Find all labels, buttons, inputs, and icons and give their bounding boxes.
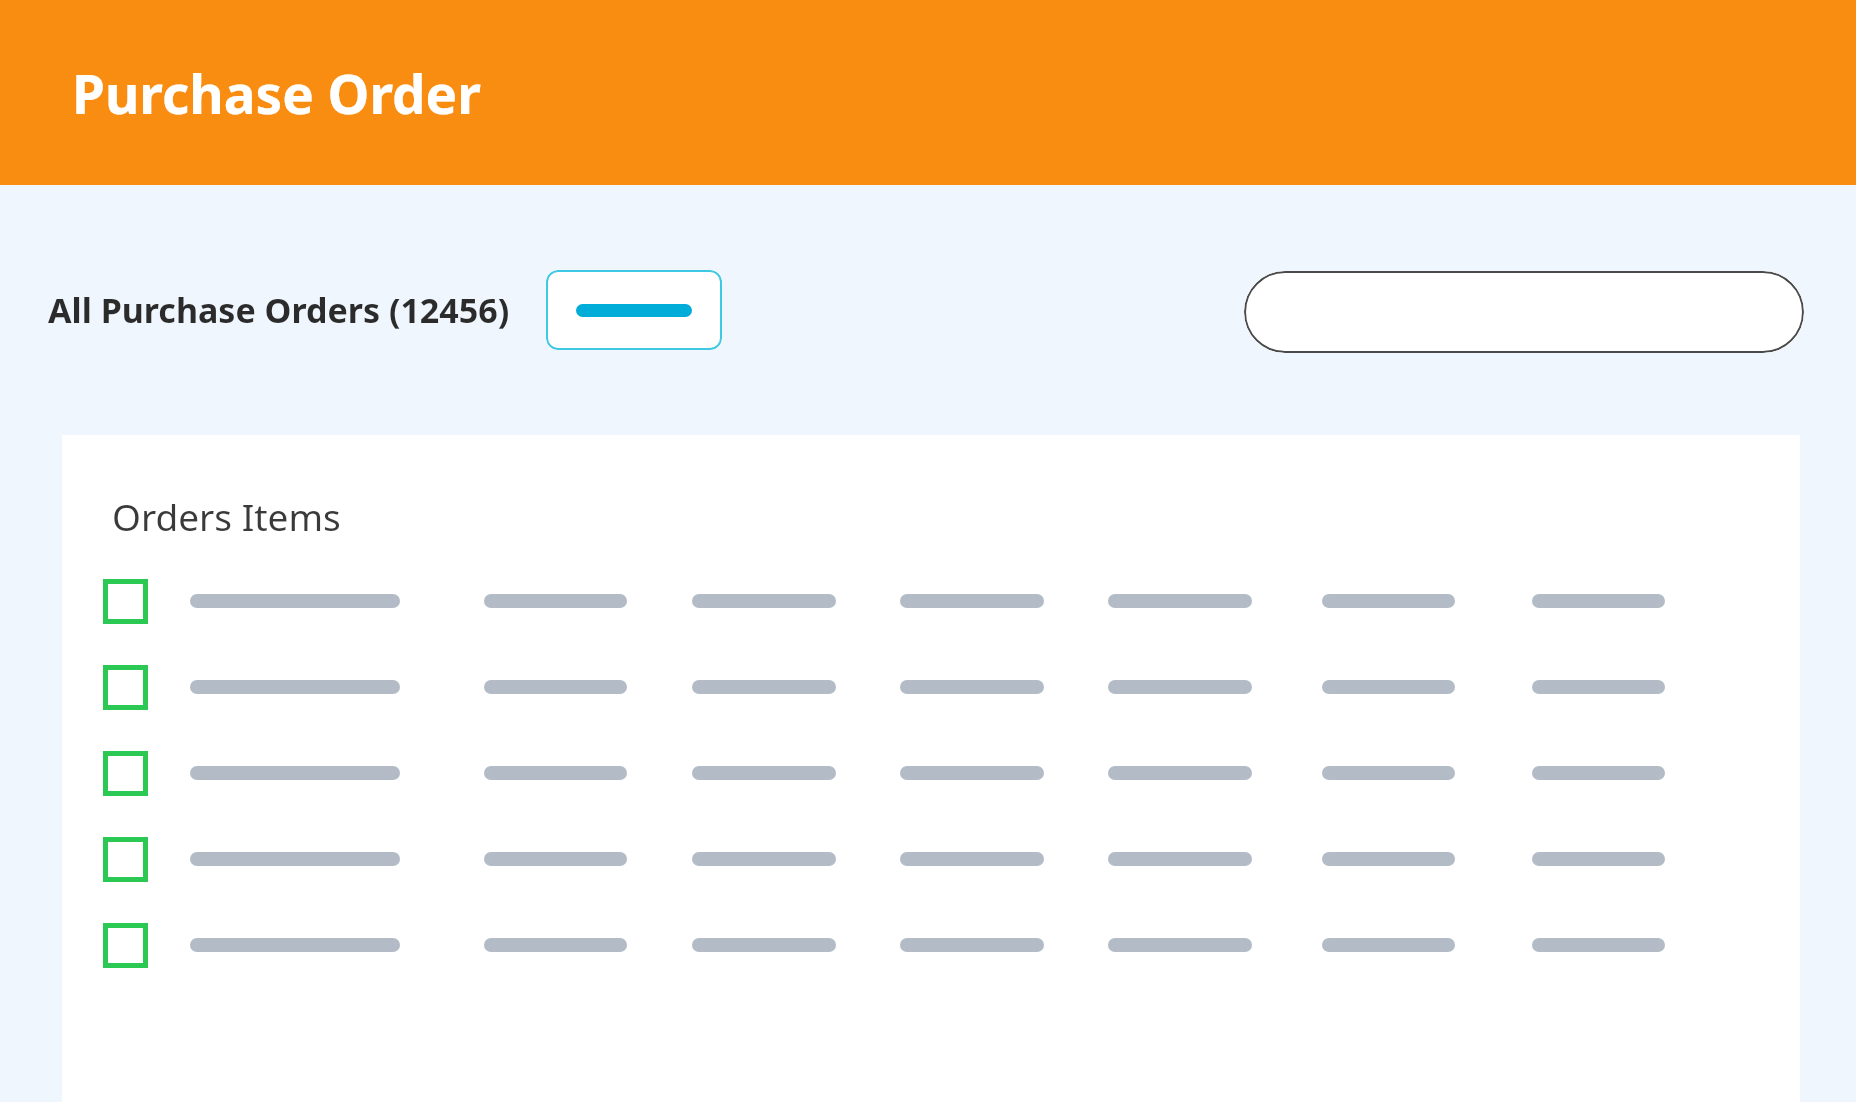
button[interactable]: Select row xyxy=(62,736,1800,810)
button[interactable]: Search xyxy=(1244,271,1804,353)
button[interactable]: Filter xyxy=(546,270,722,350)
button[interactable]: Select row xyxy=(103,837,148,882)
staticText: Purchase Order xyxy=(72,57,481,129)
button[interactable]: Select row xyxy=(103,751,148,796)
button[interactable]: Select row xyxy=(62,908,1800,982)
staticText: Orders Items xyxy=(112,491,341,541)
button[interactable]: Select row xyxy=(103,923,148,968)
button[interactable]: Select row xyxy=(103,665,148,710)
button[interactable]: Select row xyxy=(62,564,1800,638)
button[interactable]: Select row xyxy=(62,650,1800,724)
button[interactable]: Select row xyxy=(103,579,148,624)
button[interactable]: Select row xyxy=(62,822,1800,896)
staticText: All Purchase Orders (12456) xyxy=(48,287,510,333)
